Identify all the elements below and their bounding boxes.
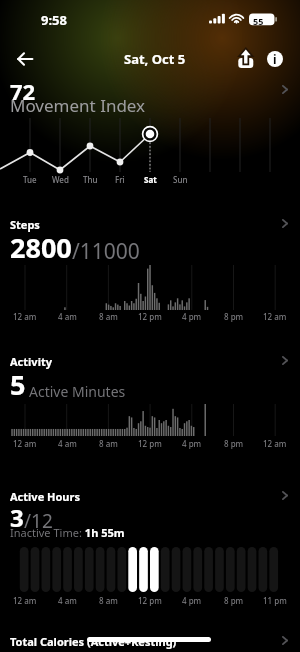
staticText: 4 am xyxy=(58,438,77,449)
staticText: Steps xyxy=(10,217,40,232)
staticText: 12 am xyxy=(13,438,37,449)
staticText: 55 xyxy=(253,15,264,27)
staticText: 12 am xyxy=(263,438,287,449)
staticText: 8 am xyxy=(99,311,118,322)
staticText: 5 xyxy=(10,366,26,403)
staticText: 12 am xyxy=(13,595,37,606)
staticText: 8 pm xyxy=(224,438,244,449)
staticText: Sat, Oct 5 xyxy=(124,50,186,68)
staticText: 4 pm xyxy=(182,311,202,322)
staticText: Wed xyxy=(52,174,69,185)
staticText: 12 pm xyxy=(138,595,162,606)
button[interactable] xyxy=(0,190,300,260)
staticText: 72 xyxy=(10,76,36,106)
staticText: Thu xyxy=(83,174,98,185)
staticText: 11 pm xyxy=(263,595,287,606)
staticText: 2800 xyxy=(10,229,72,266)
staticText: 4 am xyxy=(58,311,77,322)
staticText: i xyxy=(273,51,277,67)
staticText: 4 am xyxy=(58,595,77,606)
staticText: 4 pm xyxy=(182,595,202,606)
staticText: Inactive Time: xyxy=(10,525,82,540)
staticText: Active Hours xyxy=(10,489,80,504)
staticText: /11000 xyxy=(72,237,140,266)
staticText: Active Minutes xyxy=(29,382,126,401)
button[interactable] xyxy=(0,607,300,647)
staticText: 12 am xyxy=(263,311,287,322)
button[interactable] xyxy=(0,462,300,542)
staticText: 4 pm xyxy=(182,438,202,449)
staticText: 12 pm xyxy=(138,438,162,449)
button[interactable]: Back xyxy=(8,42,42,76)
button[interactable] xyxy=(0,76,300,116)
staticText: 12 pm xyxy=(138,311,162,322)
staticText: Tue xyxy=(23,174,37,185)
staticText: 8 pm xyxy=(224,311,244,322)
button[interactable]: Information xyxy=(261,45,289,73)
staticText: Total Calories (Active+Resting) xyxy=(10,634,177,649)
staticText: 1h 55m xyxy=(82,525,125,540)
staticText: 3 xyxy=(10,501,24,534)
staticText: 8 am xyxy=(99,595,118,606)
staticText: 9:58 xyxy=(41,11,67,29)
staticText: 12 am xyxy=(13,311,37,322)
staticText: Sat xyxy=(144,174,157,185)
button[interactable]: Share xyxy=(231,45,259,73)
staticText: 8 pm xyxy=(224,595,244,606)
staticText: Fri xyxy=(115,174,125,185)
staticText: 8 am xyxy=(99,438,118,449)
button[interactable] xyxy=(0,326,300,392)
staticText: /12 xyxy=(24,508,53,534)
staticText: Activity xyxy=(10,354,52,369)
staticText: Sun xyxy=(173,174,188,185)
staticText: Movement Index xyxy=(10,94,146,117)
